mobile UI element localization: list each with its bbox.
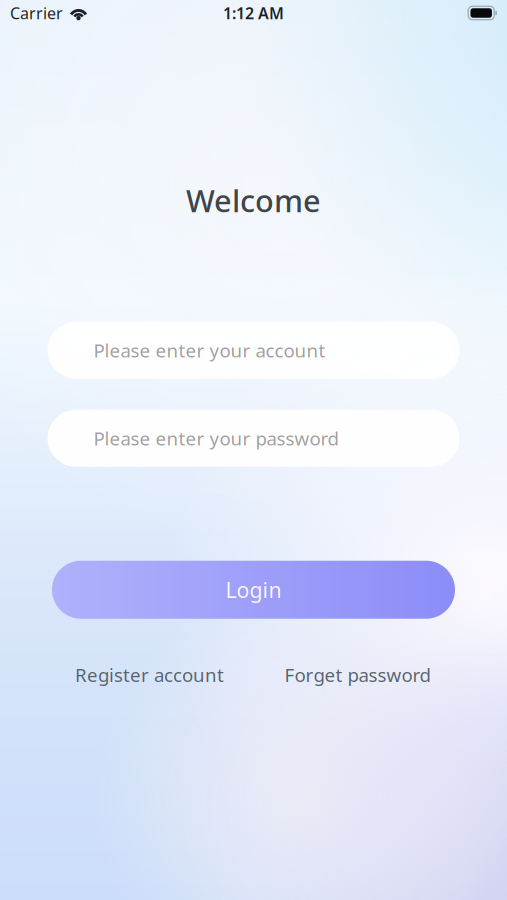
button[interactable]: Login: [52, 561, 455, 619]
staticText: Carrier: [10, 2, 63, 24]
staticText: Please enter your account: [93, 338, 325, 363]
staticText: Forget password: [284, 662, 430, 687]
staticText: Welcome: [186, 180, 321, 221]
staticText: Login: [225, 576, 281, 604]
staticText: Register account: [75, 662, 224, 687]
button[interactable]: Forget password: [282, 663, 432, 687]
button[interactable]: Register account: [74, 663, 224, 687]
staticText: Please enter your password: [93, 426, 338, 451]
staticText: 1:12 AM: [223, 2, 284, 24]
